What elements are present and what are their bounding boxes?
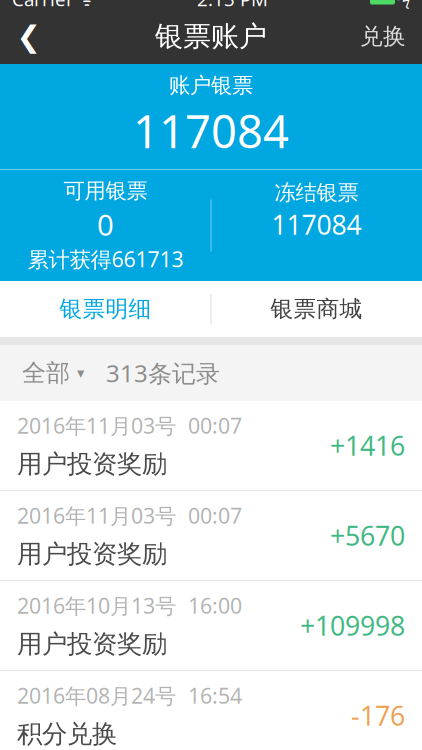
button[interactable]: 全部 [0,345,106,401]
staticText: 2016年11月03号 00:07 [17,501,242,530]
staticText: 用户投资奖励 [17,539,167,570]
staticText: ❮ [16,20,41,53]
button[interactable]: 银票商城 [211,281,422,337]
staticText: +109998 [300,608,405,643]
staticText: 117084 [271,207,361,242]
button[interactable]: 兑换 [344,9,422,64]
button[interactable]: 2016年11月03号 00:07 [0,491,422,581]
staticText: 用户投资奖励 [17,449,167,480]
staticText: 银票账户 [155,19,267,54]
staticText: +5670 [330,518,405,553]
button[interactable]: Back [0,9,58,64]
button[interactable]: 2016年10月13号 16:00 [0,581,422,671]
button[interactable]: 银票明细 [0,281,211,337]
staticText: 2016年10月13号 16:00 [17,591,242,620]
staticText: -176 [351,698,405,733]
staticText: 银票明细 [59,295,151,323]
staticText: 2016年08月24号 16:54 [17,681,242,710]
staticText: 117084 [133,100,289,161]
staticText: 可用银票 [63,178,147,204]
staticText: 账户银票 [169,72,253,98]
staticText: +1416 [330,428,405,463]
staticText: Carrier [12,0,74,11]
button[interactable]: 2016年11月03号 00:07 [0,401,422,491]
staticText: 313条记录 [106,357,220,389]
staticText: ϟ [402,0,410,9]
staticText: 0 [97,205,114,244]
staticText: 兑换 [360,23,406,50]
staticText: 用户投资奖励 [17,629,167,660]
staticText: 积分兑换 [17,719,117,750]
staticText: ▾ [77,365,84,381]
staticText: 2016年11月03号 00:07 [17,411,242,440]
staticText: 银票商城 [270,295,362,323]
staticText: 全部 [22,358,70,388]
staticText: 累计获得661713 [27,245,183,273]
staticText: 冻结银票 [274,179,358,206]
staticText: ᯤ [74,0,95,10]
staticText: 2:13 PM [197,0,268,11]
button[interactable]: 2016年08月24号 16:54 [0,671,422,750]
